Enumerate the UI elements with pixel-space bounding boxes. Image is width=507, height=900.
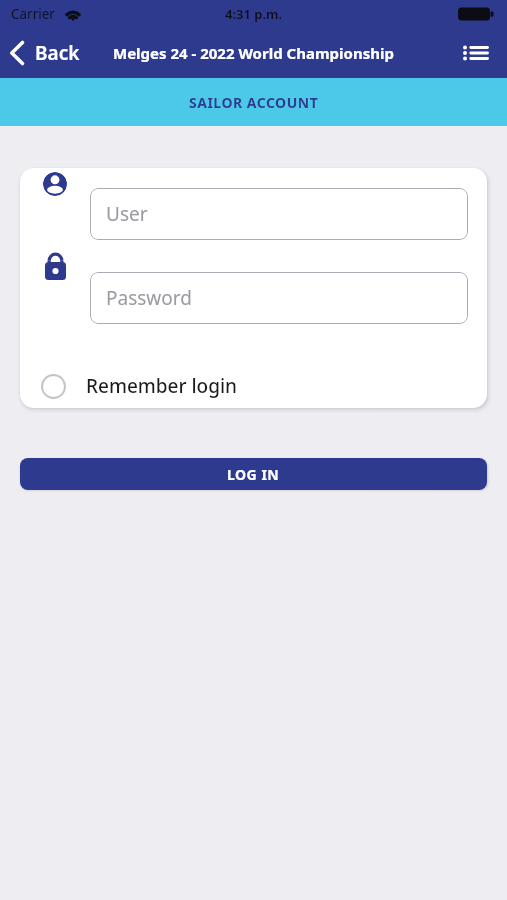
- staticText: Melges 24 - 2022 World Championship: [113, 43, 394, 63]
- staticText: User: [106, 201, 148, 227]
- button[interactable]: Remember login: [41, 373, 238, 399]
- button[interactable]: Password: [90, 272, 468, 324]
- staticText: LOG IN: [227, 465, 280, 484]
- staticText: Back: [35, 40, 80, 66]
- staticText: Carrier: [11, 5, 55, 23]
- button[interactable]: User: [90, 188, 468, 240]
- staticText: SAILOR ACCOUNT: [189, 93, 319, 112]
- staticText: 4:31 p.m.: [225, 5, 283, 23]
- staticText: Remember login: [86, 373, 238, 399]
- staticText: Password: [106, 285, 192, 311]
- button[interactable]: Back: [0, 40, 80, 66]
- button[interactable]: LOG IN: [20, 458, 487, 490]
- button[interactable]: [462, 46, 507, 60]
